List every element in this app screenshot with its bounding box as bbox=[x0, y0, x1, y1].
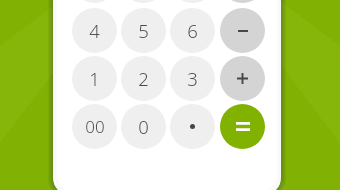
button[interactable]: 5 bbox=[121, 8, 166, 53]
button[interactable]: 00 bbox=[72, 104, 117, 149]
staticText: 6 bbox=[187, 18, 198, 43]
button[interactable]: 9 bbox=[170, 0, 215, 3]
staticText: 0 bbox=[138, 114, 149, 139]
staticText: 1 bbox=[89, 66, 100, 91]
button[interactable]: equals bbox=[220, 104, 265, 149]
staticText: 4 bbox=[89, 18, 100, 43]
button[interactable]: minus bbox=[220, 8, 265, 53]
button[interactable]: 0 bbox=[121, 104, 166, 149]
staticText: 5 bbox=[138, 18, 149, 43]
button[interactable]: times bbox=[220, 0, 265, 3]
button[interactable]: 4 bbox=[72, 8, 117, 53]
button[interactable]: 6 bbox=[170, 8, 215, 53]
button[interactable]: 1 bbox=[72, 56, 117, 101]
button[interactable]: dot bbox=[170, 104, 215, 149]
button[interactable]: 2 bbox=[121, 56, 166, 101]
staticText: 2 bbox=[138, 66, 149, 91]
staticText: 3 bbox=[187, 66, 198, 91]
button[interactable]: 7 bbox=[72, 0, 117, 3]
button[interactable]: 3 bbox=[170, 56, 215, 101]
button[interactable]: plus bbox=[220, 56, 265, 101]
button[interactable]: 8 bbox=[121, 0, 166, 3]
staticText: 00 bbox=[85, 115, 105, 138]
